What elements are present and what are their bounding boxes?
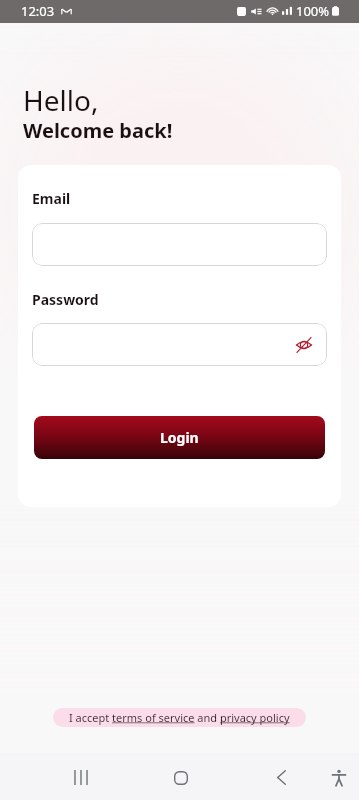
button[interactable]: Accessibility — [315, 754, 359, 800]
button[interactable]: Show password — [293, 334, 315, 356]
staticText: Email — [32, 189, 71, 208]
staticText: Login — [160, 428, 199, 447]
staticText: 12:03 — [21, 2, 55, 20]
button[interactable]: Login — [34, 416, 325, 459]
staticText: Password — [32, 290, 99, 309]
button[interactable] — [32, 223, 327, 266]
staticText: Hello, — [23, 81, 99, 119]
button[interactable]: I accept terms of service and privacy po… — [53, 708, 306, 727]
button[interactable]: Home — [157, 754, 204, 800]
staticText: 100% — [296, 2, 330, 20]
button[interactable]: Show password — [32, 323, 327, 366]
staticText: Welcome back! — [23, 117, 173, 144]
button[interactable]: Recent apps — [57, 754, 104, 800]
button[interactable]: Back — [258, 754, 305, 800]
staticText: I accept terms of service and privacy po… — [69, 710, 290, 725]
